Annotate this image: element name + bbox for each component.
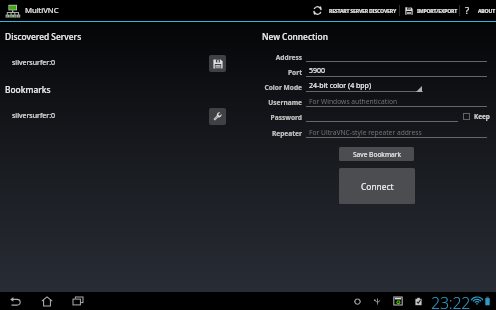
staticText: Username xyxy=(268,98,302,107)
button[interactable]: Save bookmark xyxy=(209,55,226,72)
staticText: Connect xyxy=(361,181,394,192)
staticText: IMPORT/EXPORT xyxy=(417,7,458,14)
button[interactable] xyxy=(306,50,487,62)
button[interactable]: Recent apps xyxy=(69,292,87,310)
staticText: Discovered Servers xyxy=(5,31,82,42)
staticText: Repeater xyxy=(271,129,302,138)
other: Restart server discovery xyxy=(312,5,323,16)
staticText: Save Bookmark xyxy=(353,150,401,159)
staticText: 24-bit color (4 bpp) xyxy=(309,81,372,91)
button[interactable]: Keep xyxy=(463,110,490,122)
staticText: silversurfer:0 xyxy=(12,111,56,121)
staticText: ? xyxy=(465,4,470,17)
button[interactable]: silversurfer:0 xyxy=(0,53,248,73)
staticText: ABOUT xyxy=(478,7,495,14)
button[interactable]: Home xyxy=(38,292,56,310)
staticText: MultiVNC xyxy=(25,5,59,16)
button[interactable]: Save Bookmark xyxy=(339,147,414,161)
button[interactable]: 5900 xyxy=(306,65,487,77)
staticText: 23:22 xyxy=(431,292,471,310)
staticText: For Windows authentication xyxy=(309,97,398,106)
button[interactable]: Connect xyxy=(339,168,415,204)
staticText: New Connection xyxy=(262,31,328,42)
button[interactable]: For Windows authentication xyxy=(306,95,487,107)
staticText: For UltraVNC-style repeater address xyxy=(309,128,422,137)
staticText: Keep xyxy=(474,112,490,121)
staticText: Color Mode xyxy=(264,83,302,92)
staticText: 5900 xyxy=(309,66,326,76)
button[interactable]: Restart server discovery xyxy=(309,0,399,21)
staticText: Address xyxy=(275,53,302,62)
staticText: Bookmarks xyxy=(5,84,51,95)
staticText: Password xyxy=(270,113,302,122)
button[interactable]: ? xyxy=(462,0,496,21)
button[interactable]: silversurfer:0 xyxy=(0,106,248,126)
button[interactable]: IMPORT/EXPORT xyxy=(402,0,461,21)
staticText: silversurfer:0 xyxy=(12,58,56,68)
button[interactable]: For UltraVNC-style repeater address xyxy=(306,126,487,138)
staticText: RESTART SERVER DISCOVERY xyxy=(329,7,396,14)
staticText: Port xyxy=(287,68,302,77)
button[interactable]: Back xyxy=(8,292,24,310)
button[interactable]: Edit bookmark xyxy=(209,108,226,125)
button[interactable] xyxy=(306,110,458,122)
button[interactable]: 24-bit color (4 bpp) xyxy=(306,80,423,92)
